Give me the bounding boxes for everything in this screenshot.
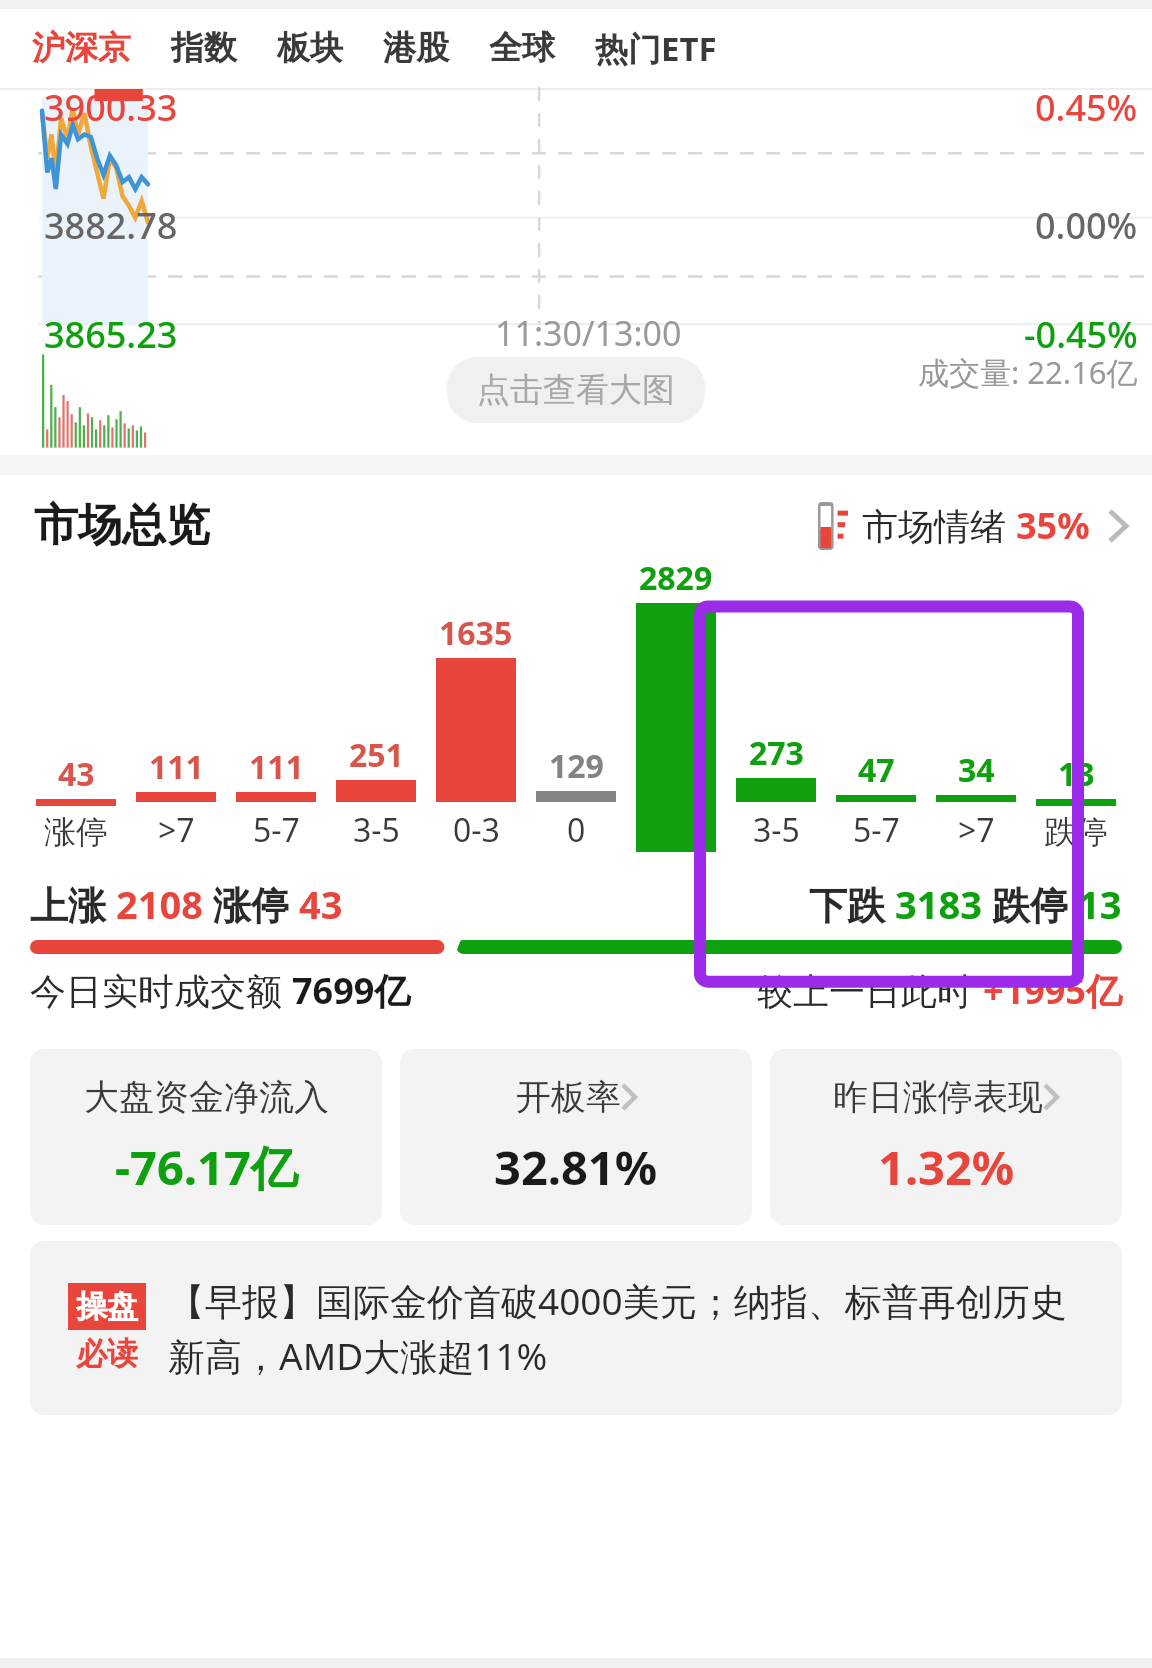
staticText: 0.45%: [1035, 83, 1138, 132]
button[interactable]: 沪深京: [30, 27, 133, 69]
staticText: 0-3: [453, 808, 500, 852]
staticText: 跌停: [982, 878, 1078, 930]
other: 市场情绪: [818, 502, 848, 550]
staticText: 板块: [277, 27, 343, 69]
staticText: 13: [1058, 752, 1095, 796]
staticText: 今日实时成交额: [30, 966, 292, 1015]
button[interactable]: 大盘资金净流入: [30, 1049, 382, 1225]
staticText: 【早报】国际金价首破4000美元；纳指、标普再创历史新高，AMD大涨超11%: [168, 1275, 1092, 1381]
staticText: 成交量: 22.16亿: [918, 351, 1138, 393]
staticText: 0: [567, 808, 586, 852]
staticText: -0.45%: [1024, 310, 1138, 359]
staticText: 3183: [895, 878, 982, 930]
staticText: 7699亿: [292, 966, 411, 1015]
button[interactable]: 指数: [169, 27, 239, 69]
staticText: 涨停: [44, 812, 108, 852]
staticText: 251: [349, 733, 404, 777]
staticText: 1635: [439, 611, 513, 655]
staticText: 涨停: [203, 878, 299, 930]
staticText: 3-5: [753, 808, 800, 852]
button[interactable]: 热门ETF: [593, 26, 719, 71]
staticText: 开板率: [516, 1075, 621, 1119]
staticText: 指数: [171, 27, 237, 69]
staticText: 5-7: [253, 808, 300, 852]
staticText: 32.81%: [494, 1135, 658, 1199]
staticText: 跌停: [1044, 812, 1108, 852]
staticText: 13: [1078, 878, 1122, 930]
staticText: 3865.23: [44, 310, 178, 359]
button[interactable]: 129: [526, 744, 626, 852]
staticText: 大盘资金净流入: [84, 1075, 329, 1119]
button[interactable]: 港股: [381, 27, 451, 69]
staticText: >7: [958, 808, 995, 852]
staticText: 昨日涨停表现: [833, 1075, 1043, 1119]
staticText: 43: [58, 752, 95, 796]
staticText: 上涨: [30, 878, 116, 930]
staticText: 3900.33: [44, 83, 178, 132]
staticText: 273: [749, 731, 804, 775]
button[interactable]: 13: [1026, 752, 1126, 852]
staticText: 必读: [76, 1334, 138, 1373]
button[interactable]: 47: [826, 748, 926, 852]
staticText: 沪深京: [32, 27, 131, 69]
button[interactable]: 开板率: [400, 1049, 752, 1225]
staticText: -76.17亿: [115, 1135, 298, 1199]
button[interactable]: 43: [26, 752, 126, 852]
staticText: 操盘: [76, 1287, 138, 1326]
staticText: 1.32%: [878, 1135, 1015, 1199]
staticText: 3882.78: [44, 201, 178, 250]
staticText: 3-5: [353, 808, 400, 852]
staticText: 111: [249, 745, 304, 789]
button[interactable]: 板块: [275, 27, 345, 69]
staticText: 港股: [383, 27, 449, 69]
button[interactable]: 全球: [487, 27, 557, 69]
staticText: 5-7: [853, 808, 900, 852]
staticText: 全球: [489, 27, 555, 69]
staticText: 0.00%: [1035, 201, 1138, 250]
button[interactable]: 111: [226, 745, 326, 852]
staticText: 市场总览: [34, 498, 210, 553]
staticText: 34: [958, 748, 995, 792]
staticText: 47: [858, 748, 895, 792]
staticText: 2108: [116, 878, 203, 930]
staticText: 热门ETF: [595, 26, 717, 71]
button[interactable]: 251: [326, 733, 426, 852]
staticText: 点击查看大图: [477, 369, 675, 411]
button[interactable]: 1635: [426, 611, 526, 852]
button[interactable]: 273: [726, 731, 826, 852]
button[interactable]: 34: [926, 748, 1026, 852]
staticText: >7: [158, 808, 195, 852]
button[interactable]: 市场情绪: [818, 495, 1128, 556]
staticText: 43: [299, 878, 343, 930]
button[interactable]: 昨日涨停表现: [770, 1049, 1122, 1225]
button[interactable]: 2829: [626, 556, 726, 852]
button[interactable]: 111: [126, 745, 226, 852]
staticText: 市场情绪: [862, 501, 1016, 550]
staticText: 129: [549, 744, 604, 788]
staticText: 35%: [1016, 501, 1090, 550]
staticText: +1995亿: [983, 966, 1122, 1015]
staticText: 下跌: [809, 878, 895, 930]
staticText: 2829: [639, 556, 713, 600]
button[interactable]: 点击查看大图: [447, 357, 705, 423]
staticText: 11:30/13:00: [495, 310, 682, 356]
button[interactable]: 操盘: [30, 1241, 1122, 1415]
staticText: 较上一日此时: [757, 966, 983, 1015]
staticText: 111: [149, 745, 204, 789]
